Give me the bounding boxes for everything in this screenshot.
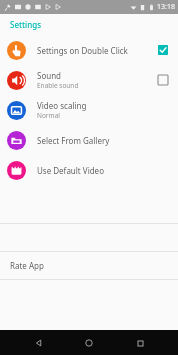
button[interactable]: Rate App: [0, 252, 178, 279]
staticText: Select From Gallery: [37, 135, 110, 146]
button[interactable]: Back: [27, 331, 51, 355]
button[interactable]: Checked: [154, 41, 172, 59]
staticText: Normal: [37, 111, 60, 120]
button[interactable]: Use Default Video: [0, 155, 178, 185]
button[interactable]: Home: [77, 331, 101, 355]
button[interactable]: Settings on Double Click: [0, 35, 178, 65]
button[interactable]: Select From Gallery: [0, 125, 178, 155]
staticText: Video scaling: [37, 100, 87, 111]
staticText: Rate App: [10, 260, 44, 271]
staticText: Settings: [10, 19, 42, 30]
staticText: Enable sound: [37, 81, 79, 90]
staticText: Use Default Video: [37, 165, 104, 176]
button[interactable]: Unchecked: [154, 71, 172, 89]
button[interactable]: Video scaling: [0, 95, 178, 125]
staticText: Sound: [37, 70, 62, 81]
staticText: Settings on Double Click: [37, 45, 128, 56]
button[interactable]: Recent apps: [128, 331, 152, 355]
staticText: 13:18: [157, 2, 175, 12]
button[interactable]: Sound: [0, 65, 178, 95]
